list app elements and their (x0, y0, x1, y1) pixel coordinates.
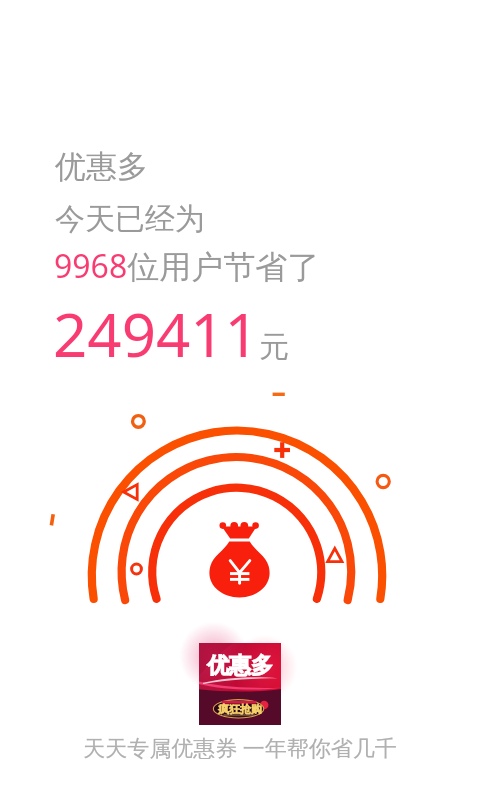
staticText: 天天专属优惠券 一年帮你省几千 (0, 732, 480, 762)
button[interactable]: 优惠多 logo (199, 643, 281, 725)
staticText: 优惠多 (55, 147, 148, 186)
staticText: 疯狂抢购 (218, 702, 262, 716)
staticText: 9968位用户节省了 (54, 244, 320, 288)
staticText: 今天已经为 (55, 200, 205, 238)
staticText: 优惠多 (207, 652, 273, 680)
staticText: 249411元 (53, 293, 289, 375)
